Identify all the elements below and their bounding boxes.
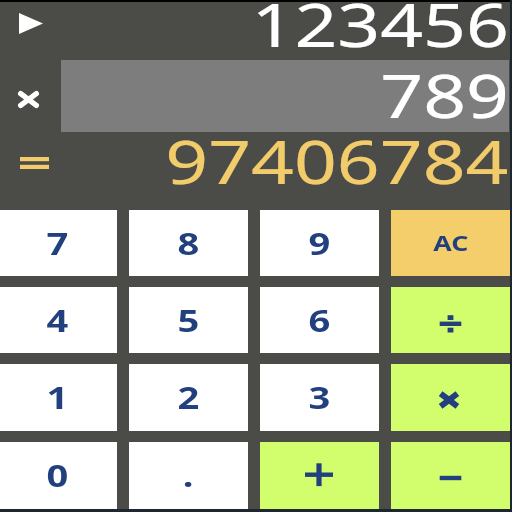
button[interactable] <box>61 60 509 132</box>
button[interactable]: 9 <box>260 210 379 276</box>
staticText: 4 <box>47 300 69 341</box>
button[interactable]: Divide <box>391 287 510 353</box>
button[interactable]: Minus <box>391 442 510 509</box>
staticText: 1 <box>47 377 69 418</box>
button[interactable]: 1 <box>0 364 117 431</box>
button[interactable]: 5 <box>129 287 248 353</box>
staticText: 3 <box>309 377 331 418</box>
staticText: 123456 <box>251 0 509 65</box>
staticText: 789 <box>380 54 509 136</box>
button[interactable]: 0 <box>0 442 117 509</box>
button[interactable]: 4 <box>0 287 117 353</box>
staticText: 97406784 <box>165 120 509 202</box>
staticText: 0 <box>47 455 69 496</box>
staticText: 8 <box>178 223 200 264</box>
staticText: AC <box>433 229 469 258</box>
button[interactable]: Multiply <box>391 364 510 431</box>
staticText: 5 <box>178 300 200 341</box>
staticText: 2 <box>178 377 200 418</box>
button[interactable]: AC <box>391 210 510 276</box>
button[interactable]: 7 <box>0 210 117 276</box>
button[interactable]: 6 <box>260 287 379 353</box>
staticText: . <box>183 455 194 496</box>
button[interactable]: . <box>129 442 248 509</box>
staticText: 9 <box>309 223 331 264</box>
staticText: 7 <box>47 223 69 264</box>
button[interactable]: 2 <box>129 364 248 431</box>
button[interactable]: Plus <box>260 442 379 509</box>
button[interactable]: 3 <box>260 364 379 431</box>
staticText: 6 <box>309 300 331 341</box>
button[interactable]: 8 <box>129 210 248 276</box>
